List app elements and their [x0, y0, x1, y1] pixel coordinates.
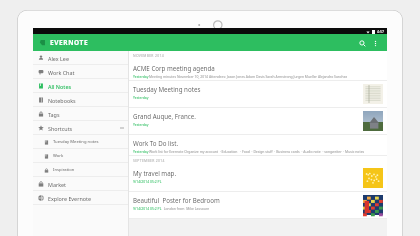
staticText: 4:57 [377, 29, 384, 34]
staticText: Tags [48, 111, 60, 118]
button[interactable]: ACME Corp meeting agenda [129, 60, 387, 81]
button[interactable]: My travel map. [129, 165, 387, 192]
button[interactable]: Work [33, 149, 128, 163]
button[interactable]: Inspiration [33, 163, 128, 177]
button[interactable]: All Notes [33, 79, 128, 93]
staticText: Grand Auque, France. [133, 112, 196, 120]
button[interactable]: More options [369, 37, 381, 49]
staticText: Meeting minutes November 10, 2014 Attend… [149, 74, 348, 79]
button[interactable]: Notebooks [33, 93, 128, 107]
button[interactable]: Work To Do list. [129, 135, 387, 156]
staticText: Explore Evernote [48, 195, 91, 202]
staticText: SEPTEMBER 2014 [133, 158, 165, 163]
button[interactable]: Market [33, 177, 128, 191]
staticText: Work To Do list. [133, 139, 179, 147]
button[interactable]: Grand Auque, France. [129, 108, 387, 135]
staticText: Notebooks [48, 97, 76, 104]
staticText: Alex Lee [48, 55, 69, 62]
button[interactable]: Search [355, 36, 369, 50]
staticText: London from Mike Lassoure [162, 206, 210, 211]
button[interactable]: Tuesday Meeting notes [33, 135, 128, 149]
staticText: My travel map. [133, 169, 177, 177]
staticText: ACME Corp meeting agenda [133, 64, 215, 72]
button[interactable]: Tuesday Meeting notes [129, 81, 387, 108]
button[interactable]: Beautiful Poster for Bedroom [129, 192, 387, 219]
staticText: Tuesday Meeting notes [133, 85, 201, 93]
staticText: Work list for Evernote Organize my accou… [149, 149, 383, 155]
staticText: Yesterday [133, 95, 149, 100]
button[interactable]: Work Chat [33, 65, 128, 79]
staticText: Work Chat [48, 69, 75, 76]
other: Evernote logo [39, 39, 46, 46]
staticText: Yesterday [133, 122, 149, 127]
staticText: Work [53, 153, 64, 159]
staticText: Tuesday Meeting notes [53, 139, 99, 145]
staticText: Shortcuts [48, 125, 73, 132]
staticText: Yesterday [133, 149, 149, 154]
button[interactable]: Shortcuts [33, 121, 128, 135]
staticText: Yesterday [133, 74, 149, 79]
staticText: Inspiration [53, 167, 75, 173]
button[interactable]: Explore Evernote [33, 191, 128, 205]
staticText: EVERNOTE [50, 38, 89, 47]
button[interactable]: Alex Lee [33, 51, 128, 65]
button[interactable]: Tags [33, 107, 128, 121]
staticText: NOVEMBER 2014 [133, 53, 164, 58]
staticText: Beautiful Poster for Bedroom [133, 196, 220, 204]
staticText: 9/14/2014 05:2 PL [133, 179, 162, 184]
staticText: 9/14/2014 05:2 PL [133, 206, 162, 211]
staticText: Market [48, 181, 67, 188]
staticText: All Notes [48, 83, 72, 90]
